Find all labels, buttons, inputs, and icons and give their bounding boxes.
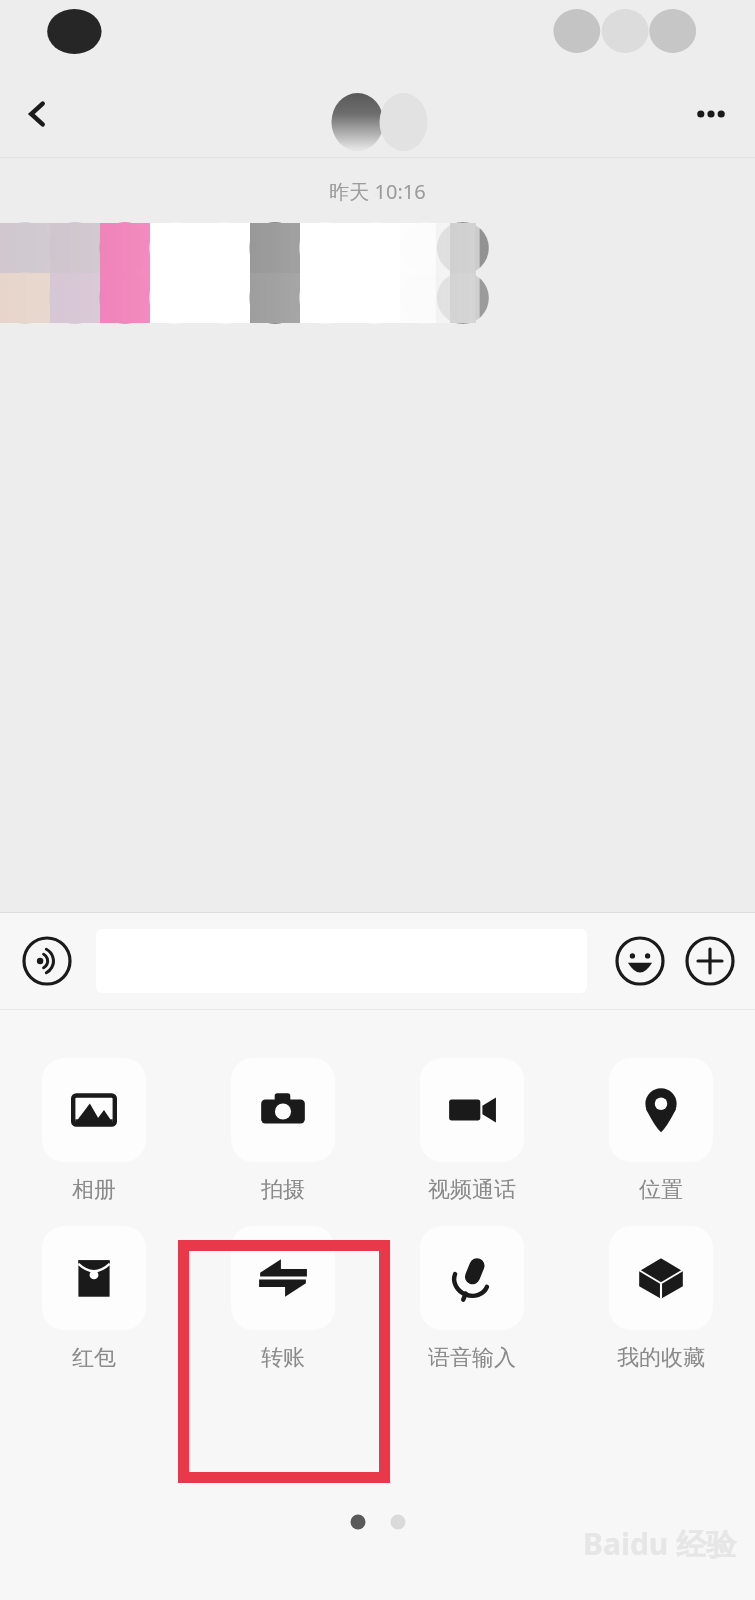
button[interactable]: 语音输入 (377, 1226, 566, 1372)
button[interactable]: 我的收藏 (566, 1226, 755, 1372)
button[interactable]: 红包 (0, 1226, 188, 1372)
staticText: Baidu 经验 (583, 1523, 737, 1564)
button[interactable]: 转账 (188, 1226, 377, 1372)
button[interactable]: 相册 (0, 1058, 188, 1204)
button[interactable]: 拍摄 (188, 1058, 377, 1204)
staticText: 位置 (639, 1176, 683, 1204)
staticText: 拍摄 (261, 1176, 305, 1204)
staticText: 转账 (261, 1344, 305, 1372)
staticText: 语音输入 (428, 1344, 516, 1372)
button[interactable]: Back (10, 86, 66, 142)
button[interactable]: 位置 (566, 1058, 755, 1204)
button[interactable]: More (681, 932, 739, 990)
staticText: 相册 (72, 1176, 116, 1204)
button[interactable]: 视频通话 (377, 1058, 566, 1204)
button[interactable]: Voice input (18, 932, 76, 990)
button[interactable]: More options (681, 84, 741, 144)
staticText: 红包 (72, 1344, 116, 1372)
button[interactable]: Emoji (611, 932, 669, 990)
staticText: 视频通话 (428, 1176, 516, 1204)
staticText: 昨天 10:16 (0, 178, 755, 205)
staticText: 我的收藏 (617, 1344, 705, 1372)
